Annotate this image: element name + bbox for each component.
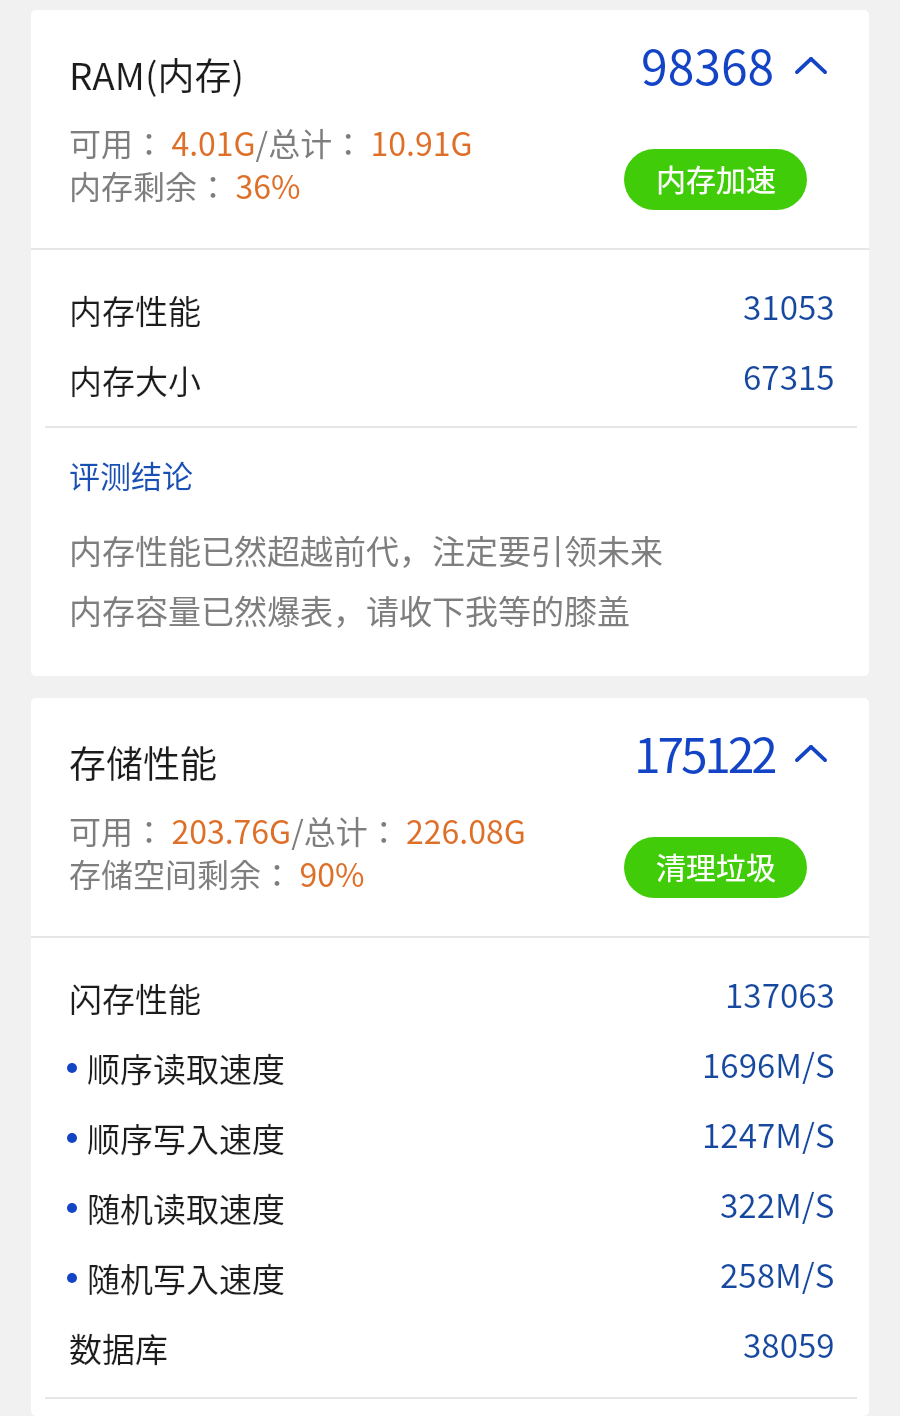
button[interactable]: 内存加速: [624, 149, 807, 210]
staticText: 清理垃圾: [656, 844, 776, 887]
staticText: 可用： 4.01G/总计： 10.91G 内存剩余： 36%: [69, 119, 473, 209]
staticText: 1696M/S: [702, 1040, 835, 1088]
button[interactable]: 清理垃圾: [624, 837, 807, 898]
button[interactable]: 顺序写入速度: [31, 1103, 869, 1173]
staticText: 31053: [743, 282, 835, 330]
button[interactable]: 内存大小: [31, 345, 869, 415]
staticText: 98368: [641, 29, 775, 87]
button[interactable]: 数据库: [31, 1313, 869, 1383]
staticText: 137063: [725, 970, 835, 1018]
button[interactable]: 闪存性能: [31, 963, 869, 1033]
staticText: 38059: [743, 1320, 835, 1368]
staticText: 随机读取速度: [87, 1184, 285, 1232]
staticText: 顺序读取速度: [87, 1044, 285, 1092]
staticText: 可用： 203.76G/总计： 226.08G 存储空间剩余： 90%: [69, 807, 526, 897]
staticText: 1247M/S: [702, 1110, 835, 1158]
staticText: 322M/S: [720, 1180, 835, 1228]
staticText: 内存加速: [656, 156, 776, 199]
staticText: 顺序写入速度: [87, 1114, 285, 1162]
button[interactable]: 内存性能: [31, 275, 869, 345]
staticText: 闪存性能: [69, 974, 201, 1022]
staticText: 评测结论: [69, 452, 193, 497]
staticText: 175122: [634, 717, 775, 775]
button[interactable]: 存储性能: [31, 698, 869, 936]
staticText: 随机写入速度: [87, 1254, 285, 1302]
staticText: 内存性能已然超越前代，注定要引领未来 内存容量已然爆表，请收下我等的膝盖: [69, 526, 663, 634]
staticText: 内存性能: [69, 286, 201, 334]
other: Collapse: [795, 57, 827, 74]
staticText: 存储性能: [69, 735, 217, 789]
staticText: 258M/S: [720, 1250, 835, 1298]
staticText: RAM(内存): [69, 47, 244, 101]
other: Collapse: [795, 745, 827, 762]
staticText: 67315: [743, 352, 835, 400]
button[interactable]: 随机写入速度: [31, 1243, 869, 1313]
button[interactable]: 随机读取速度: [31, 1173, 869, 1243]
staticText: 数据库: [69, 1324, 168, 1372]
staticText: 内存大小: [69, 356, 201, 404]
button[interactable]: RAM(内存): [31, 10, 869, 248]
button[interactable]: 顺序读取速度: [31, 1033, 869, 1103]
